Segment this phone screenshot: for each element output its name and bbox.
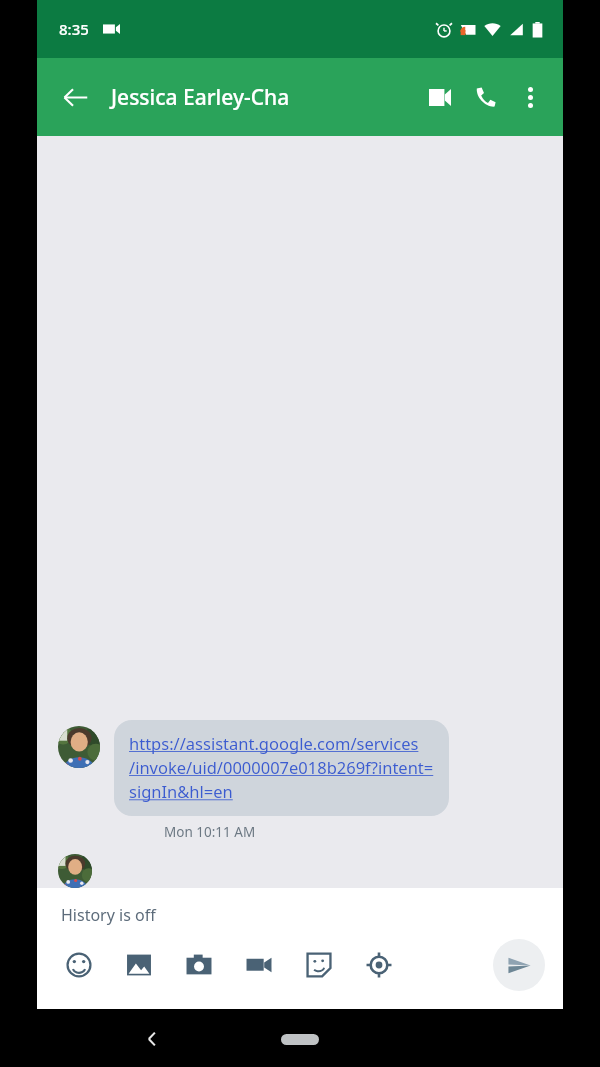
staticText: https://assistant.google.com/services /i…: [129, 732, 434, 803]
button[interactable]: https://assistant.google.com/services /i…: [114, 720, 449, 816]
button[interactable]: Video: [229, 935, 289, 995]
button[interactable]: Emoji: [49, 935, 109, 995]
button[interactable]: Back: [51, 73, 99, 121]
button[interactable]: Camera: [169, 935, 229, 995]
staticText: 8:35: [59, 19, 89, 39]
button[interactable]: Call: [463, 74, 509, 120]
button[interactable]: More options: [509, 74, 551, 120]
button[interactable]: Gallery: [109, 935, 169, 995]
button[interactable]: Back: [130, 1017, 174, 1061]
staticText: Jessica Earley-Cha: [111, 83, 290, 112]
button[interactable]: Sticker: [289, 935, 349, 995]
staticText: History is off: [61, 904, 156, 926]
staticText: Mon 10:11 AM: [164, 823, 256, 841]
button[interactable]: Location: [349, 935, 409, 995]
button[interactable]: Send: [493, 939, 545, 991]
button[interactable]: Home: [278, 1026, 322, 1052]
button[interactable]: Video call: [417, 74, 463, 120]
